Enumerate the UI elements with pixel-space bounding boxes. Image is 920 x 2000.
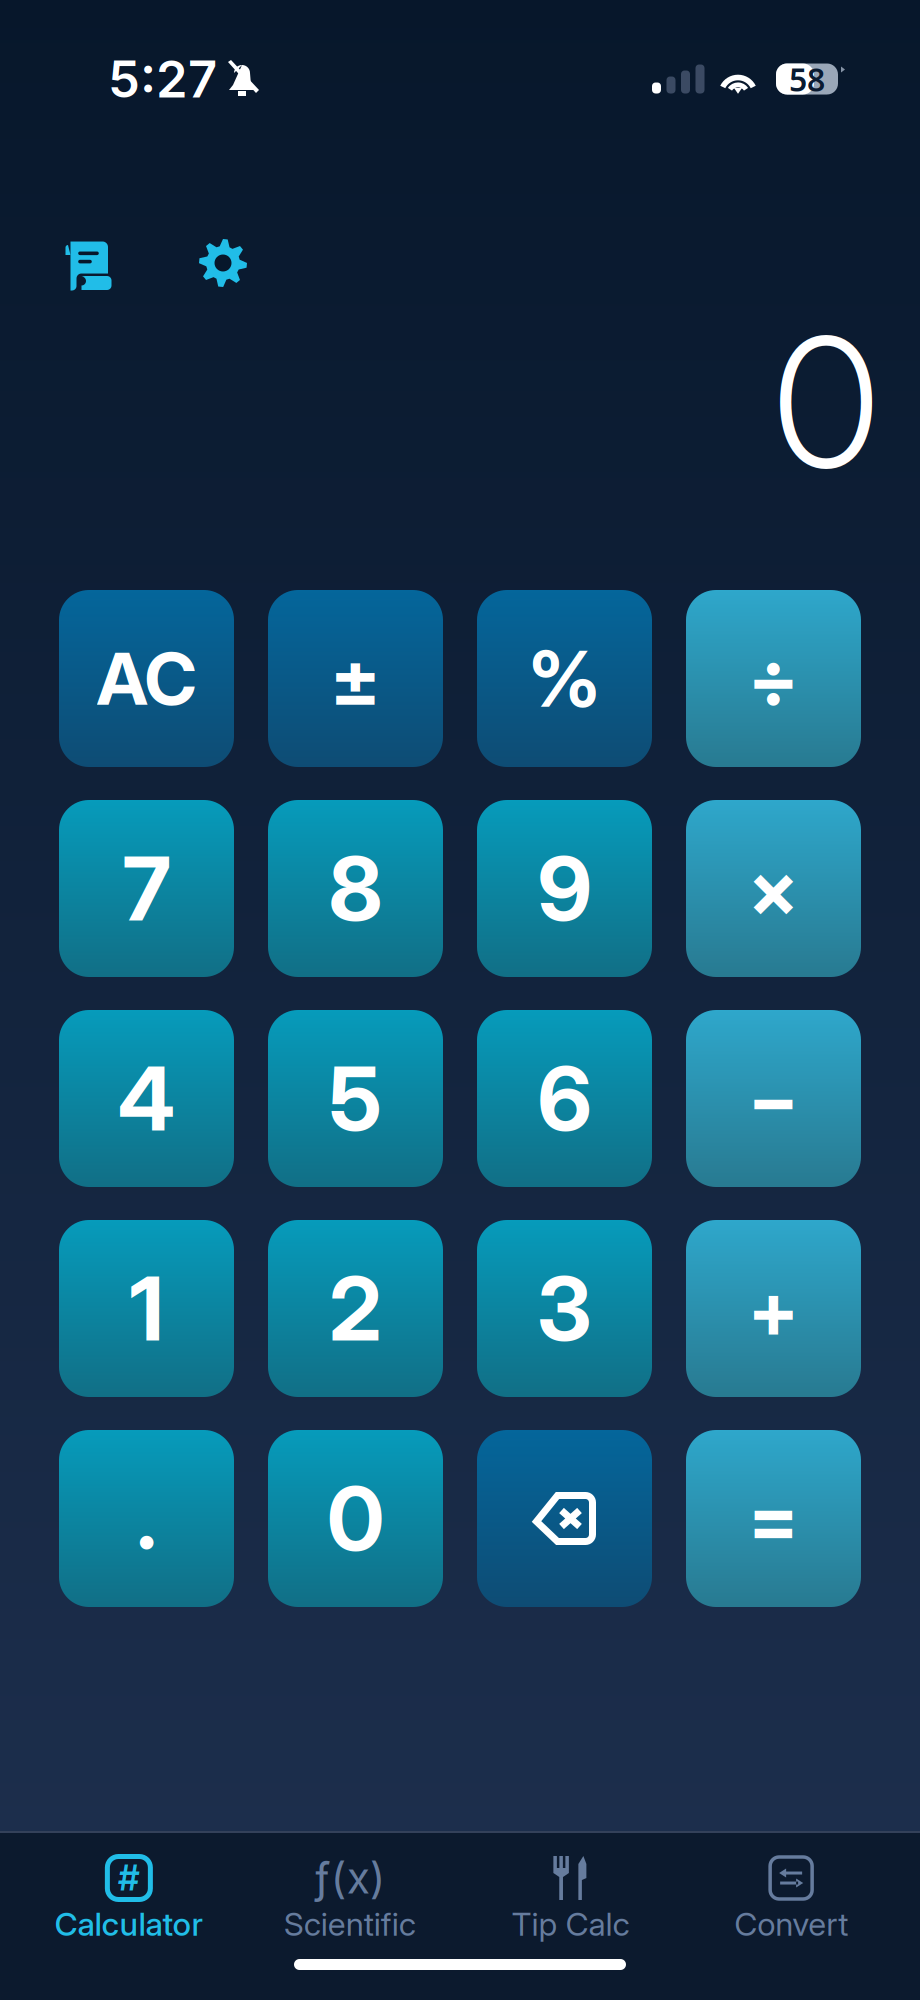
button[interactable]: # <box>18 1856 239 1937</box>
button[interactable]: 8 <box>268 800 443 977</box>
staticText: 5:27 <box>108 48 217 110</box>
staticText: 3 <box>537 1255 592 1362</box>
staticText: . <box>136 1468 156 1568</box>
button[interactable]: 1 <box>59 1220 234 1397</box>
button[interactable]: Settings <box>199 239 247 287</box>
staticText: Calculator <box>54 1905 203 1943</box>
staticText: − <box>748 1052 799 1145</box>
staticText: # <box>118 1857 140 1899</box>
staticText: ƒ(x) <box>314 1852 386 1904</box>
staticText: 7 <box>122 835 170 942</box>
button[interactable]: Tip Calc <box>460 1856 681 1937</box>
button[interactable]: 3 <box>477 1220 652 1397</box>
staticText: 9 <box>537 835 591 942</box>
staticText: 0 <box>773 294 879 510</box>
button[interactable]: 6 <box>477 1010 652 1187</box>
button[interactable]: 7 <box>59 800 234 977</box>
button[interactable]: Percent <box>477 590 652 767</box>
staticText: Convert <box>734 1905 848 1943</box>
staticText: Tip Calc <box>511 1905 629 1943</box>
staticText: = <box>748 1472 799 1565</box>
button[interactable]: Multiply <box>686 800 861 977</box>
staticText: 58 <box>789 58 825 100</box>
staticText: 0 <box>327 1465 384 1572</box>
button[interactable]: Minus <box>686 1010 861 1187</box>
staticText: ± <box>330 632 381 725</box>
button[interactable]: Backspace <box>477 1430 652 1607</box>
staticText: + <box>748 1262 799 1355</box>
button[interactable]: 9 <box>477 800 652 977</box>
staticText: Scientific <box>284 1905 416 1943</box>
button[interactable]: ƒ(x) <box>239 1856 460 1937</box>
button[interactable]: 5 <box>268 1010 443 1187</box>
button[interactable]: Plus <box>686 1220 861 1397</box>
button[interactable]: Equals <box>686 1430 861 1607</box>
staticText: 6 <box>537 1045 591 1152</box>
button[interactable]: 4 <box>59 1010 234 1187</box>
button[interactable]: Plus minus <box>268 590 443 767</box>
staticText: ÷ <box>748 632 799 725</box>
staticText: AC <box>96 635 196 722</box>
button[interactable]: Convert <box>681 1856 902 1937</box>
staticText: % <box>528 632 601 725</box>
staticText: 2 <box>329 1255 382 1362</box>
button[interactable]: Divide <box>686 590 861 767</box>
staticText: 8 <box>328 835 382 942</box>
button[interactable]: Decimal point <box>59 1430 234 1607</box>
staticText: 1 <box>129 1255 163 1362</box>
button[interactable]: 0 <box>268 1430 443 1607</box>
button[interactable]: History <box>56 232 112 294</box>
button[interactable]: AC <box>59 590 234 767</box>
staticText: 5 <box>329 1045 382 1152</box>
staticText: 4 <box>117 1045 175 1152</box>
button[interactable]: 2 <box>268 1220 443 1397</box>
staticText: × <box>748 842 799 935</box>
